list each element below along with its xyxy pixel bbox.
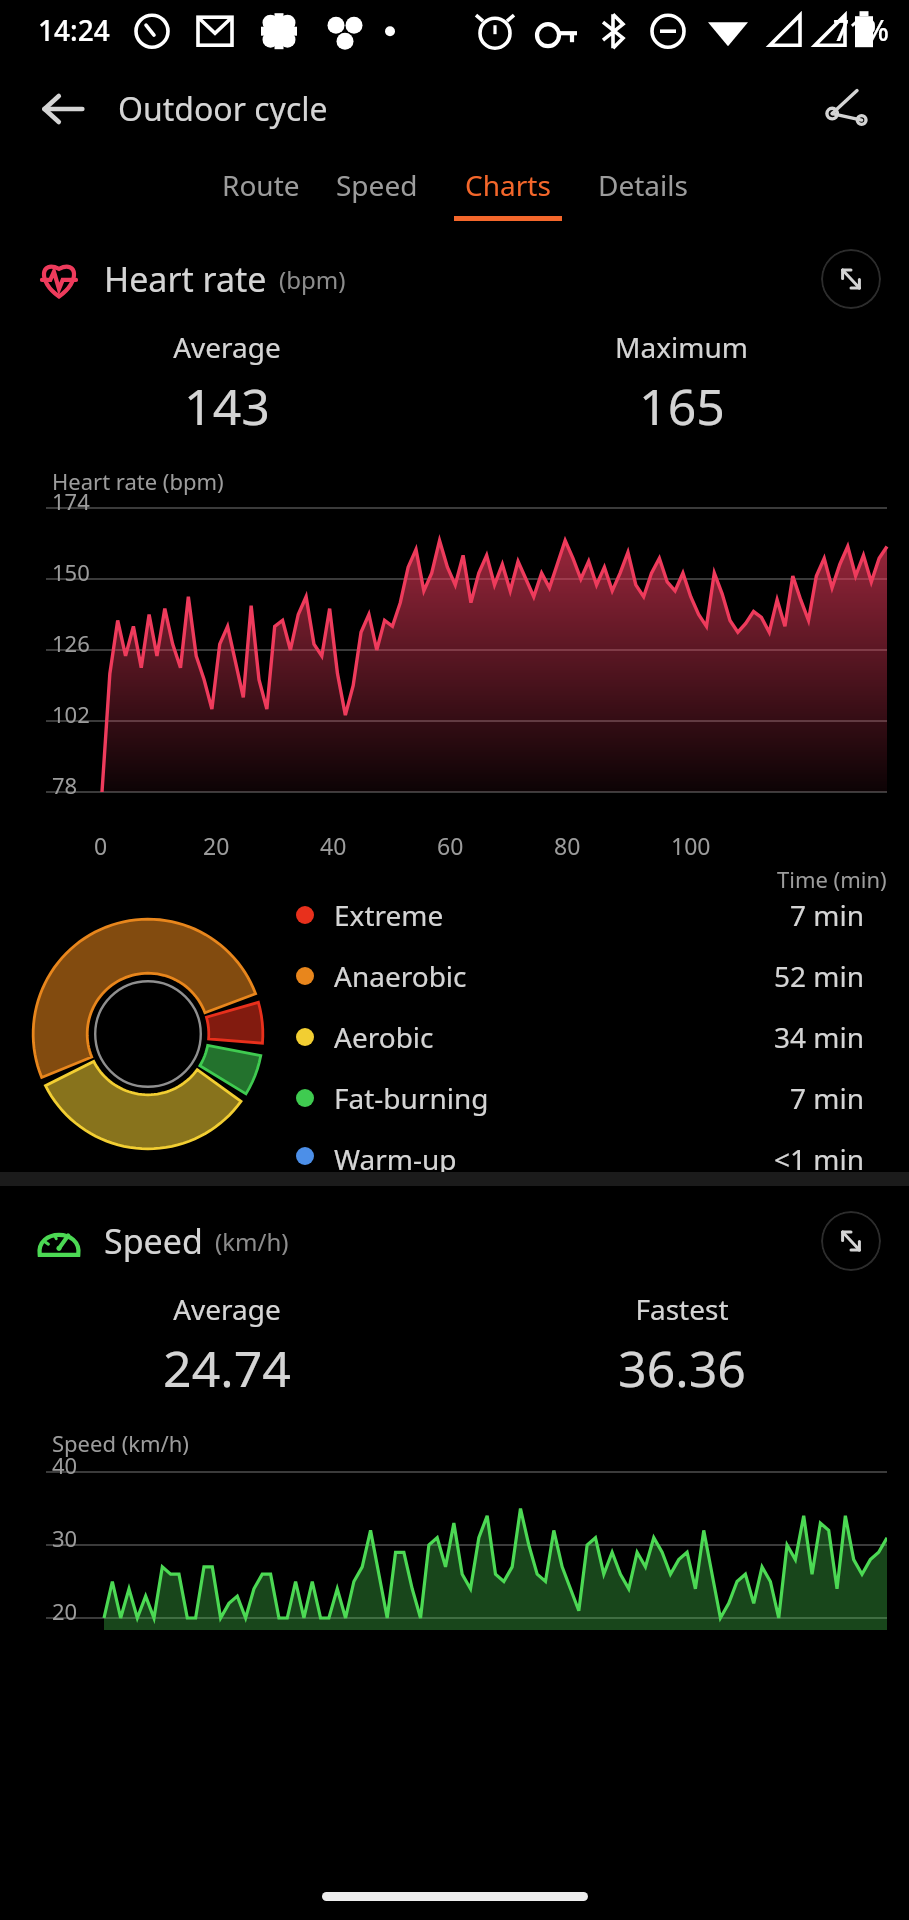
staticText: Route	[222, 166, 300, 204]
button[interactable]: Expand Heart rate chart	[821, 249, 881, 309]
staticText: 40	[52, 1450, 78, 1480]
button[interactable]: Back	[26, 72, 100, 146]
staticText: 165	[639, 372, 725, 440]
button[interactable]: Route	[204, 158, 318, 221]
staticText: 14:24	[38, 11, 110, 49]
button[interactable]: Details	[580, 158, 706, 221]
staticText: 78	[52, 770, 78, 800]
staticText: 100	[671, 830, 711, 861]
staticText: Average	[173, 1290, 281, 1328]
button[interactable]: Extreme	[296, 896, 865, 934]
staticText: 102	[52, 699, 90, 729]
button[interactable]: Expand Speed chart	[821, 1211, 881, 1271]
staticText: Time (min)	[777, 864, 887, 894]
staticText: 0	[94, 830, 108, 861]
staticText: 20	[203, 830, 230, 861]
staticText: 20	[52, 1596, 78, 1626]
button[interactable]: Share route	[809, 72, 883, 146]
staticText: 7 min	[790, 1079, 865, 1117]
staticText: Aerobic	[334, 1018, 434, 1056]
staticText: 36.36	[618, 1334, 746, 1402]
staticText: 7 min	[790, 896, 865, 934]
staticText: 24.74	[163, 1334, 291, 1402]
staticText: 34 min	[774, 1018, 865, 1056]
button[interactable]: Charts	[436, 158, 580, 221]
staticText: Average	[173, 328, 281, 366]
staticText: 80	[554, 830, 581, 861]
staticText: 60	[437, 830, 464, 861]
staticText: Warm-up	[334, 1140, 457, 1172]
staticText: Fastest	[635, 1290, 729, 1328]
staticText: Outdoor cycle	[118, 87, 328, 131]
button[interactable]: Warm-up	[296, 1140, 865, 1172]
staticText: Speed (km/h)	[52, 1428, 189, 1458]
button[interactable]: Anaerobic	[296, 957, 865, 995]
staticText: 126	[52, 628, 90, 658]
staticText: Extreme	[334, 896, 444, 934]
staticText: (bpm)	[279, 263, 346, 296]
staticText: Fat-burning	[334, 1079, 489, 1117]
button[interactable]: Speed	[318, 158, 436, 221]
staticText: 52 min	[774, 957, 865, 995]
staticText: 150	[52, 557, 90, 587]
staticText: Charts	[465, 166, 551, 204]
staticText: Maximum	[615, 328, 748, 366]
staticText: 40	[320, 830, 347, 861]
staticText: 143	[184, 372, 270, 440]
button[interactable]: Fat-burning	[296, 1079, 865, 1117]
staticText: 71%	[833, 11, 889, 49]
staticText: Details	[598, 166, 688, 204]
staticText: <1 min	[774, 1140, 865, 1172]
staticText: (km/h)	[215, 1225, 289, 1258]
staticText: Speed	[336, 166, 418, 204]
staticText: 174	[52, 486, 90, 516]
staticText: Anaerobic	[334, 957, 467, 995]
staticText: Speed	[104, 1218, 203, 1264]
button[interactable]: Aerobic	[296, 1018, 865, 1056]
staticText: 30	[52, 1523, 78, 1553]
staticText: Heart rate	[104, 256, 267, 302]
staticText: Heart rate (bpm)	[52, 466, 224, 496]
